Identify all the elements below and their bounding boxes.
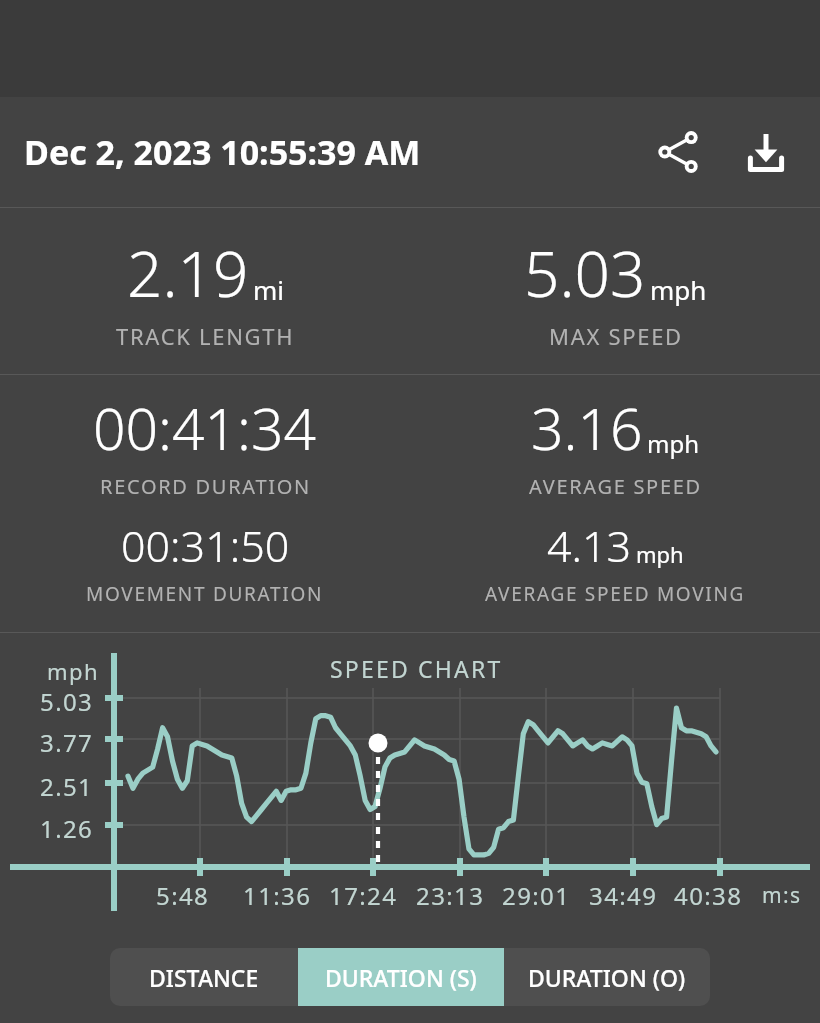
staticText: SPEED CHART: [330, 653, 503, 684]
staticText: m:s: [762, 881, 802, 910]
staticText: mph: [647, 427, 700, 460]
staticText: mph: [636, 539, 684, 569]
staticText: mph: [650, 272, 707, 307]
button[interactable]: DISTANCE: [110, 948, 298, 1006]
staticText: AVERAGE SPEED MOVING: [485, 581, 746, 607]
button[interactable]: Share: [648, 122, 708, 182]
staticText: DISTANCE: [149, 962, 259, 993]
staticText: 40:38: [674, 879, 743, 912]
staticText: RECORD DURATION: [100, 473, 311, 500]
staticText: AVERAGE SPEED: [529, 473, 702, 500]
staticText: MOVEMENT DURATION: [86, 581, 324, 607]
staticText: MAX SPEED: [549, 321, 683, 351]
staticText: DURATION (S): [325, 962, 477, 993]
staticText: 00:41:34: [93, 389, 317, 467]
staticText: Dec 2, 2023 10:55:39 AM: [24, 129, 421, 175]
staticText: mph: [47, 656, 99, 686]
staticText: 2.19: [127, 231, 249, 315]
staticText: 1.26: [40, 812, 94, 845]
staticText: 17:24: [329, 879, 398, 912]
staticText: 3.77: [40, 726, 94, 759]
staticText: 11:36: [243, 879, 312, 912]
staticText: TRACK LENGTH: [116, 321, 295, 351]
staticText: 23:13: [416, 879, 485, 912]
staticText: mi: [253, 272, 285, 307]
button[interactable]: Download: [736, 122, 796, 182]
staticText: 29:01: [502, 879, 571, 912]
staticText: 00:31:50: [121, 516, 290, 575]
button[interactable]: DURATION (S): [298, 948, 504, 1006]
staticText: 2.51: [40, 770, 94, 803]
button[interactable]: DURATION (O): [504, 948, 710, 1006]
staticText: DURATION (O): [528, 962, 686, 993]
staticText: 5:48: [156, 879, 210, 912]
staticText: 3.16: [531, 389, 643, 467]
staticText: 4.13: [547, 516, 632, 575]
staticText: 34:49: [589, 879, 658, 912]
staticText: 5.03: [524, 231, 646, 315]
staticText: 5.03: [40, 685, 94, 718]
